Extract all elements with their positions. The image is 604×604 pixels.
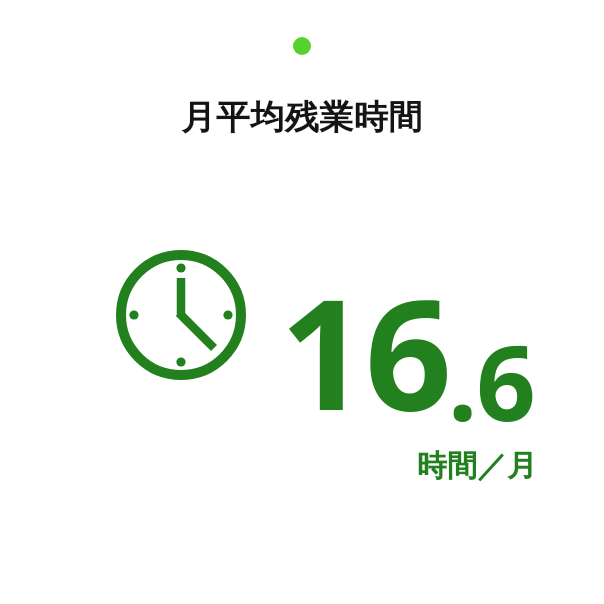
- staticText: 時間／月: [417, 447, 537, 485]
- staticText: 16: [280, 248, 450, 455]
- staticText: .6: [448, 310, 535, 452]
- button[interactable]: Accent indicator: [293, 37, 311, 55]
- button[interactable]: 月平均残業時間: [0, 96, 604, 604]
- button[interactable]: Clock: [116, 248, 537, 493]
- other: Clock: [116, 250, 246, 380]
